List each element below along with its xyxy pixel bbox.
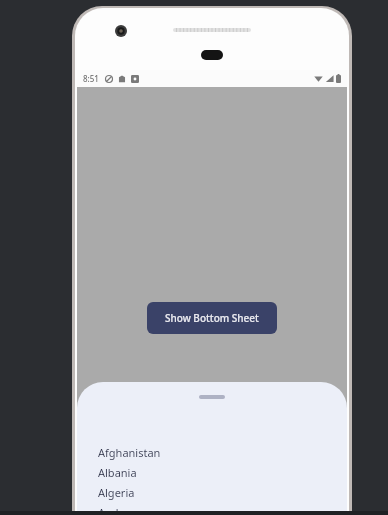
button[interactable]: Albania (77, 462, 347, 482)
staticText: Albania (98, 465, 137, 480)
staticText: Afghanistan (98, 445, 161, 460)
staticText: 8:51 (83, 73, 99, 84)
button[interactable]: Drag handle (199, 395, 225, 399)
button[interactable]: Show Bottom Sheet (147, 302, 277, 334)
button[interactable]: Algeria (77, 482, 347, 502)
button[interactable]: Afghanistan (77, 442, 347, 462)
staticText: Show Bottom Sheet (165, 311, 259, 325)
staticText: Andorra (98, 505, 141, 515)
staticText: Algeria (98, 485, 135, 500)
button[interactable]: Andorra (77, 502, 347, 515)
